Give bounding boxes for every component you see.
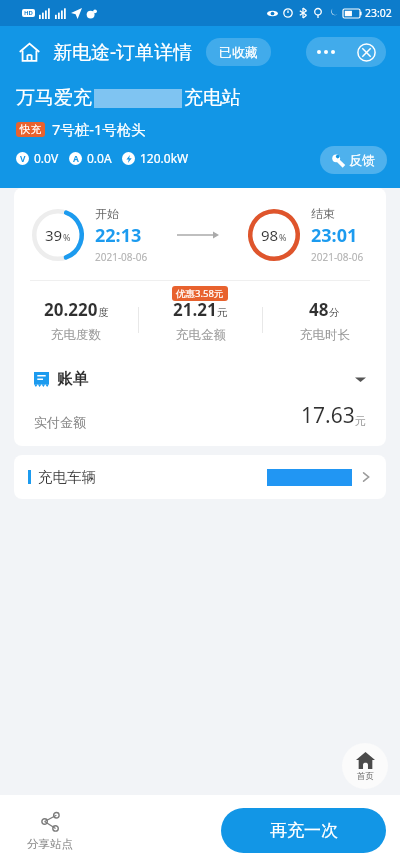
button[interactable]: 账单 xyxy=(14,359,386,399)
staticText: 优惠3.58元 xyxy=(176,287,224,300)
staticText: A xyxy=(73,153,79,165)
staticText: 万马爱充 xyxy=(16,86,92,110)
button[interactable]: Home xyxy=(16,39,42,65)
staticText: 充电站 xyxy=(184,86,241,110)
button[interactable]: More options xyxy=(306,37,346,67)
staticText: 7号桩-1号枪头 xyxy=(52,119,146,139)
staticText: 2021-08-06 xyxy=(95,250,148,264)
staticText: 48 xyxy=(309,298,329,321)
button[interactable]: Close xyxy=(346,37,386,67)
staticText: 快充 xyxy=(20,123,41,136)
staticText: 分享站点 xyxy=(27,837,73,851)
staticText: 新电途-订单详情 xyxy=(53,39,193,65)
staticText: 98 xyxy=(261,225,279,245)
staticText: 充电金额 xyxy=(176,327,226,343)
staticText: 账单 xyxy=(57,369,88,389)
staticText: 23:02 xyxy=(365,6,392,20)
staticText: 已收藏 xyxy=(219,44,258,60)
staticText: 反馈 xyxy=(349,152,375,168)
staticText: V xyxy=(20,153,26,165)
staticText: 21.21 xyxy=(173,298,217,321)
staticText: 39 xyxy=(45,225,63,245)
staticText: 元 xyxy=(217,306,228,319)
staticText: 23:01 xyxy=(311,223,358,248)
button[interactable]: 反馈 xyxy=(320,146,387,174)
button[interactable]: 分享站点 xyxy=(0,795,100,866)
staticText: 开始 xyxy=(95,206,119,221)
button[interactable]: 再充一次 xyxy=(221,808,386,853)
staticText: 充电时长 xyxy=(300,327,350,343)
staticText: 再充一次 xyxy=(270,820,338,841)
staticText: 22:13 xyxy=(95,223,142,248)
staticText: 分 xyxy=(329,306,340,319)
button[interactable]: Home xyxy=(342,743,388,789)
button[interactable]: 充电车辆 xyxy=(14,455,386,499)
staticText: 首页 xyxy=(357,771,374,782)
staticText: 0.0V xyxy=(34,150,59,166)
staticText: % xyxy=(63,231,71,243)
staticText: 17.63 xyxy=(301,401,355,430)
staticText: 实付金额 xyxy=(34,414,86,430)
staticText: 结束 xyxy=(311,206,335,221)
staticText: 充电车辆 xyxy=(38,468,96,486)
button[interactable]: 已收藏 xyxy=(206,38,271,66)
staticText: 元 xyxy=(355,414,366,428)
staticText: 度 xyxy=(98,306,109,319)
staticText: 2021-08-06 xyxy=(311,250,364,264)
staticText: HD xyxy=(24,9,33,17)
staticText: 120.0kW xyxy=(140,150,189,166)
staticText: 0.0A xyxy=(87,150,112,166)
staticText: % xyxy=(279,231,287,243)
staticText: 充电度数 xyxy=(51,327,101,343)
staticText: 20.220 xyxy=(44,298,98,321)
